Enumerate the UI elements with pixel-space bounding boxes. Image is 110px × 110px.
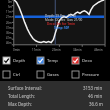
staticText: Depth (13, 58, 26, 64)
staticText: 3153 min (83, 85, 103, 91)
staticText: Total Length: (8, 93, 35, 99)
staticText: 41m (6, 36, 12, 40)
staticText: Pressure (82, 72, 100, 78)
other: Temp (37, 57, 44, 64)
other: Gases (37, 71, 44, 78)
staticText: Gases (47, 72, 59, 78)
staticText: 5m (8, 5, 12, 9)
staticText: Deco (82, 58, 92, 64)
staticText: 0m (8, 0, 12, 4)
other: Ctrl (3, 71, 10, 78)
staticText: 0min (13, 48, 20, 52)
staticText: 46m (6, 41, 12, 45)
other: Pressure (72, 71, 79, 78)
button[interactable]: Temp (37, 57, 72, 64)
staticText: 21m (6, 15, 12, 19)
staticText: 31m (6, 26, 12, 30)
staticText: 26m (6, 21, 12, 25)
staticText: Temp: 50F (54, 26, 70, 30)
staticText: Temp (47, 58, 58, 64)
button[interactable]: Deco (72, 57, 107, 64)
button[interactable]: Gases (37, 71, 72, 78)
staticText: Ctrl (13, 72, 20, 78)
staticText: Mode: OC Rec Gas: 21/00 (45, 18, 83, 22)
staticText: 11min (32, 48, 41, 52)
staticText: 36m (6, 31, 12, 35)
staticText: Depth: 29.8m 15:10 (45, 14, 76, 18)
staticText: 46min (94, 48, 103, 52)
button[interactable]: Ctrl (3, 71, 37, 78)
staticText: 11m (6, 10, 12, 14)
button[interactable]: Pressure (72, 71, 107, 78)
staticText: 23min (52, 48, 61, 52)
other: Depth (3, 57, 10, 64)
staticText: Max Depth: (8, 101, 32, 107)
staticText: 36.6 m (89, 101, 103, 107)
button[interactable]: Depth (3, 57, 37, 64)
staticText: Deco: 3m for 1min (47, 22, 75, 26)
other: Deco (72, 57, 79, 64)
staticText: Surface Interval: (8, 85, 42, 91)
staticText: 46 min (88, 93, 103, 99)
staticText: 34min (73, 48, 82, 52)
